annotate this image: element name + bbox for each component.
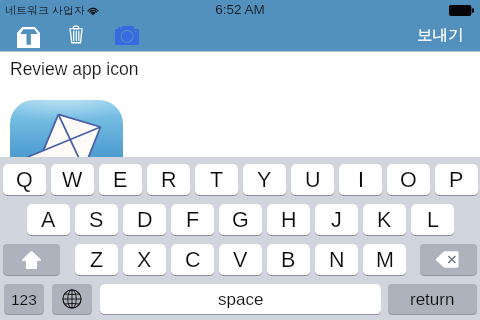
staticText: W bbox=[62, 168, 83, 192]
staticText: L bbox=[427, 208, 439, 232]
button[interactable]: Q bbox=[3, 164, 46, 195]
button[interactable]: V bbox=[219, 244, 262, 275]
staticText: U bbox=[305, 168, 321, 192]
button[interactable]: Camera bbox=[104, 22, 150, 51]
staticText: O bbox=[400, 168, 417, 192]
button[interactable]: F bbox=[171, 204, 214, 235]
staticText: K bbox=[377, 208, 392, 232]
button[interactable]: M bbox=[363, 244, 406, 275]
staticText: 네트워크 사업자 bbox=[5, 3, 86, 17]
button[interactable]: L bbox=[411, 204, 454, 235]
button[interactable]: A bbox=[27, 204, 70, 235]
button[interactable]: D bbox=[123, 204, 166, 235]
button[interactable]: Archive bbox=[5, 22, 50, 51]
staticText: P bbox=[449, 168, 464, 192]
staticText: M bbox=[376, 248, 394, 272]
button[interactable]: N bbox=[315, 244, 358, 275]
button[interactable]: W bbox=[51, 164, 94, 195]
staticText: D bbox=[137, 208, 153, 232]
staticText: V bbox=[233, 248, 248, 272]
staticText: S bbox=[89, 208, 104, 232]
button[interactable]: G bbox=[219, 204, 262, 235]
button[interactable]: R bbox=[147, 164, 190, 195]
button[interactable]: C bbox=[171, 244, 214, 275]
staticText: A bbox=[41, 208, 56, 232]
button[interactable]: U bbox=[291, 164, 334, 195]
staticText: Z bbox=[90, 248, 104, 272]
staticText: T bbox=[210, 168, 224, 192]
button[interactable]: Backspace bbox=[420, 244, 477, 275]
button[interactable]: Shift bbox=[3, 244, 60, 275]
button[interactable]: B bbox=[267, 244, 310, 275]
staticText: C bbox=[185, 248, 201, 272]
staticText: Review app icon bbox=[10, 59, 139, 79]
staticText: R bbox=[161, 168, 177, 192]
button[interactable]: return bbox=[388, 284, 477, 314]
button[interactable]: space bbox=[100, 284, 381, 314]
staticText: X bbox=[137, 248, 152, 272]
button[interactable]: E bbox=[99, 164, 142, 195]
staticText: N bbox=[329, 248, 345, 272]
staticText: E bbox=[113, 168, 128, 192]
button[interactable]: T bbox=[195, 164, 238, 195]
staticText: Q bbox=[16, 168, 33, 192]
button[interactable]: Change keyboard bbox=[52, 284, 92, 314]
staticText: return bbox=[410, 290, 455, 309]
staticText: F bbox=[186, 208, 200, 232]
button[interactable]: 123 bbox=[4, 284, 44, 314]
button[interactable]: App icon bbox=[10, 100, 123, 213]
button[interactable]: Z bbox=[75, 244, 118, 275]
staticText: G bbox=[232, 208, 249, 232]
button[interactable]: J bbox=[315, 204, 358, 235]
staticText: J bbox=[331, 208, 342, 232]
button[interactable]: P bbox=[435, 164, 478, 195]
button[interactable]: K bbox=[363, 204, 406, 235]
staticText: 보내기 bbox=[417, 25, 464, 45]
staticText: space bbox=[218, 290, 264, 309]
staticText: H bbox=[281, 208, 297, 232]
button[interactable]: 보내기 bbox=[404, 20, 472, 49]
button[interactable]: X bbox=[123, 244, 166, 275]
button[interactable]: Y bbox=[243, 164, 286, 195]
button[interactable]: O bbox=[387, 164, 430, 195]
button[interactable]: S bbox=[75, 204, 118, 235]
staticText: B bbox=[281, 248, 296, 272]
staticText: I bbox=[358, 168, 364, 192]
button[interactable]: I bbox=[339, 164, 382, 195]
staticText: 123 bbox=[11, 291, 37, 308]
staticText: 6:52 AM bbox=[0, 2, 480, 17]
staticText: Y bbox=[257, 168, 272, 192]
button[interactable]: H bbox=[267, 204, 310, 235]
button[interactable]: Delete bbox=[60, 22, 92, 51]
